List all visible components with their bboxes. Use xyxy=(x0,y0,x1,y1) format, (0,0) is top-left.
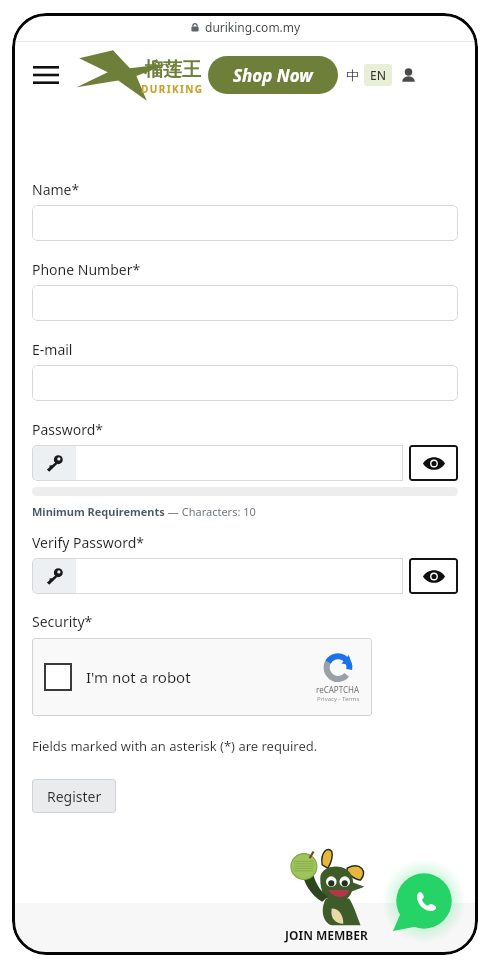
button[interactable] xyxy=(32,205,458,241)
staticText: E-mail xyxy=(32,340,73,359)
staticText: DURIKING xyxy=(141,82,204,96)
staticText: duriking.com.my xyxy=(205,19,301,35)
staticText: Fields marked with an asterisk (*) are r… xyxy=(32,737,318,755)
button[interactable] xyxy=(32,285,458,321)
button[interactable]: Account xyxy=(397,64,419,86)
button[interactable] xyxy=(32,445,403,481)
staticText: EN xyxy=(370,67,386,83)
staticText: Phone Number* xyxy=(32,260,141,279)
staticText: 榴莲王 xyxy=(144,58,201,82)
staticText: Register xyxy=(47,787,102,806)
button[interactable]: Show password xyxy=(409,445,458,481)
staticText: Privacy - Terms xyxy=(317,695,360,703)
button[interactable]: Chat on WhatsApp xyxy=(382,859,466,943)
button[interactable]: I'm not a robot checkbox xyxy=(44,663,72,691)
button[interactable]: Show password xyxy=(409,558,458,594)
button[interactable]: 中 xyxy=(346,67,359,83)
button[interactable]: Shop Now xyxy=(208,56,338,94)
button[interactable] xyxy=(32,365,458,401)
staticText: JOIN MEMBER xyxy=(285,927,368,943)
button[interactable]: Join Member xyxy=(278,843,374,943)
staticText: Shop Now xyxy=(233,64,313,87)
button[interactable]: Menu xyxy=(26,55,66,95)
staticText: 中 xyxy=(346,67,359,83)
button[interactable]: Register xyxy=(32,779,116,813)
staticText: Security* xyxy=(32,612,93,631)
button[interactable] xyxy=(32,558,403,594)
button[interactable]: EN xyxy=(364,64,392,86)
staticText: Name* xyxy=(32,180,80,199)
staticText: Verify Password* xyxy=(32,533,145,552)
staticText: reCAPTCHA xyxy=(316,684,360,695)
staticText: — Characters: 10 xyxy=(165,504,256,519)
staticText: Password* xyxy=(32,420,104,439)
staticText: Minimum Requirements xyxy=(32,504,165,519)
staticText: I'm not a robot xyxy=(86,667,191,687)
